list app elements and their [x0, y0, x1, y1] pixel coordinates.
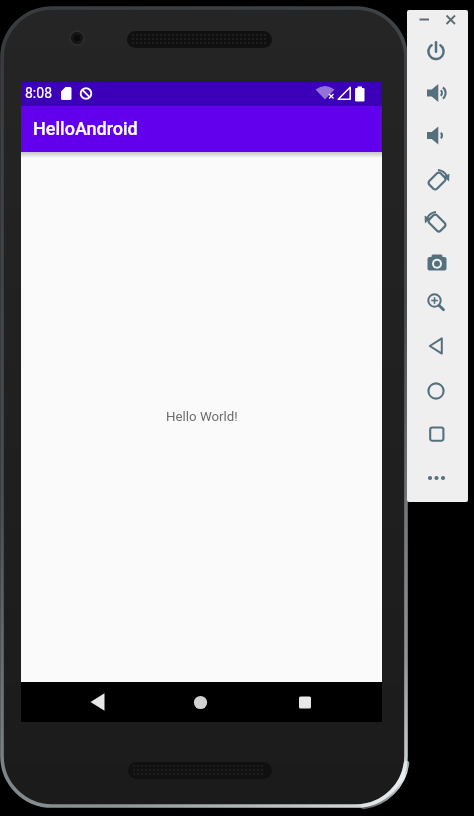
button[interactable]	[420, 285, 454, 317]
button[interactable]	[180, 684, 220, 720]
button[interactable]	[285, 684, 325, 720]
button[interactable]	[420, 165, 454, 197]
staticText: Hello World!	[166, 409, 238, 425]
button[interactable]	[420, 207, 454, 239]
button[interactable]	[420, 330, 454, 362]
button[interactable]	[420, 418, 454, 450]
button[interactable]	[420, 375, 454, 407]
button[interactable]	[78, 684, 118, 720]
button[interactable]	[420, 77, 454, 109]
button[interactable]	[414, 10, 435, 29]
staticText: 8:08	[25, 85, 52, 101]
button[interactable]	[420, 119, 454, 151]
button[interactable]	[420, 462, 454, 494]
button[interactable]	[440, 10, 461, 29]
staticText: HelloAndroid	[33, 118, 138, 139]
button[interactable]	[420, 247, 454, 279]
button[interactable]	[420, 35, 454, 67]
